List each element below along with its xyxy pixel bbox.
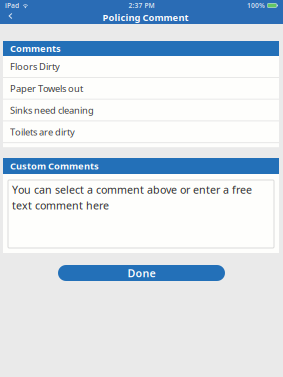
button[interactable]: Sinks need cleaning [3,100,279,121]
button[interactable]: Paper Towels out [3,78,279,100]
staticText: Comments [10,42,61,55]
button[interactable]: Back [1,11,19,24]
staticText: Custom Comments [10,160,99,172]
staticText: Policing Comment [102,11,188,24]
staticText: text comment here [12,198,109,212]
staticText: You can select a comment above or enter … [12,182,252,197]
staticText: 100% [247,1,265,10]
staticText: Paper Towels out [10,82,83,94]
staticText: Done [127,266,155,280]
button[interactable]: Floors Dirty [3,56,279,78]
button[interactable]: Toilets are dirty [3,121,279,143]
button[interactable]: Done [58,265,225,281]
staticText: 2:37 PM [128,1,154,10]
staticText: Sinks need cleaning [10,104,94,116]
staticText: Toilets are dirty [10,126,75,138]
staticText: Floors Dirty [10,60,60,73]
staticText: iPad [5,1,19,10]
